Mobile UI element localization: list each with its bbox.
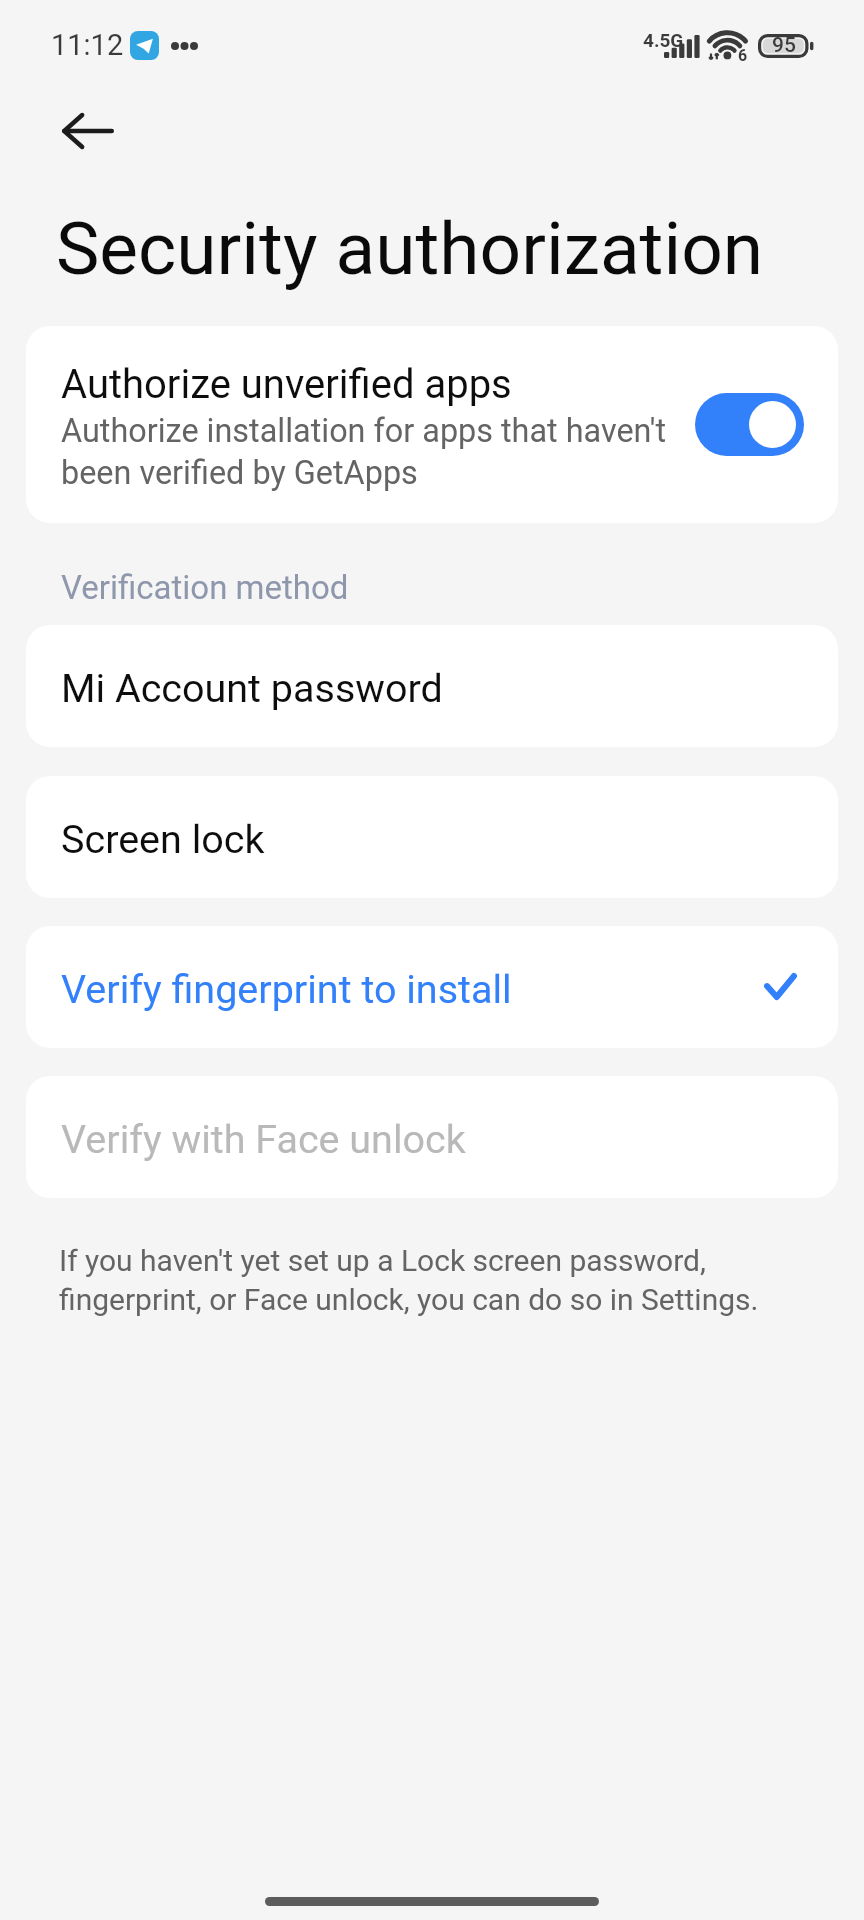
button[interactable]: Verify with Face unlock [26, 1076, 838, 1198]
button[interactable]: Mi Account password [26, 625, 838, 747]
button[interactable]: Authorize unverified apps [26, 326, 838, 523]
staticText: 4.5G [643, 29, 684, 51]
staticText: If you haven't yet set up a Lock screen … [59, 1243, 771, 1318]
staticText: 95 [772, 33, 796, 58]
staticText: Verification method [61, 568, 349, 607]
button[interactable]: Back [40, 89, 136, 173]
button[interactable]: Screen lock [26, 776, 838, 898]
staticText: Screen lock [61, 816, 265, 862]
staticText: Authorize unverified apps [61, 361, 512, 408]
staticText: Verify with Face unlock [61, 1116, 466, 1162]
staticText: Authorize installation for apps that hav… [61, 412, 677, 492]
staticText: 6 [738, 46, 748, 65]
staticText: Mi Account password [61, 665, 443, 711]
button[interactable]: Verify fingerprint to install [26, 926, 838, 1048]
button[interactable]: Authorize unverified apps toggle [695, 393, 804, 456]
staticText: Security authorization [56, 206, 764, 292]
staticText: 11:12 [51, 28, 124, 62]
staticText: Verify fingerprint to install [61, 966, 512, 1012]
